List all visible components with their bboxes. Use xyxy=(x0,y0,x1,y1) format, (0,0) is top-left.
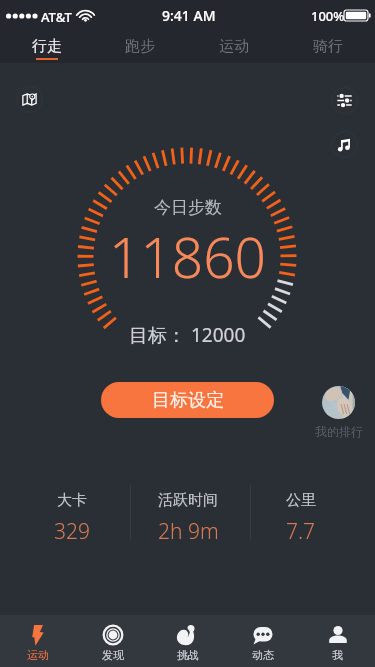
staticText: 大卡 xyxy=(57,491,87,510)
button[interactable]: 大卡 xyxy=(12,485,132,541)
staticText: 运动 xyxy=(27,648,49,662)
staticText: 100% xyxy=(311,7,345,25)
staticText: 2h 9m xyxy=(158,517,219,546)
button[interactable]: 活跃时间 xyxy=(128,485,248,541)
staticText: 行走 xyxy=(32,37,62,56)
staticText: 329 xyxy=(54,517,90,546)
staticText: 9:41 AM xyxy=(162,6,216,25)
staticText: 活跃时间 xyxy=(158,491,218,510)
button[interactable]: Map xyxy=(16,86,43,113)
staticText: 7.7 xyxy=(286,517,316,546)
staticText: 我的排行 xyxy=(315,424,363,439)
staticText: 运动 xyxy=(219,37,249,56)
button[interactable]: 我 xyxy=(300,615,375,667)
button[interactable]: 运动 xyxy=(0,615,75,667)
staticText: 动态 xyxy=(252,648,274,662)
staticText: 今日步数 xyxy=(154,197,222,218)
button[interactable]: 骑行 xyxy=(281,31,375,63)
staticText: AT&T xyxy=(41,8,72,26)
staticText: 目标设定 xyxy=(152,389,224,412)
staticText: 跑步 xyxy=(125,37,155,56)
button[interactable]: Music xyxy=(331,131,358,158)
button[interactable]: 发现 xyxy=(75,615,150,667)
staticText: 公里 xyxy=(286,491,316,510)
button[interactable]: 运动 xyxy=(187,31,281,63)
button[interactable]: 跑步 xyxy=(93,31,187,63)
button[interactable]: Settings xyxy=(331,87,358,114)
button[interactable]: 目标设定 xyxy=(101,382,274,418)
button[interactable]: 公里 xyxy=(241,485,361,541)
button[interactable]: 行走 xyxy=(0,31,93,63)
staticText: 目标： 12000 xyxy=(129,322,246,348)
button[interactable]: 挑战 xyxy=(150,615,225,667)
staticText: 骑行 xyxy=(313,37,343,56)
button[interactable]: 我的排行 xyxy=(312,386,365,439)
staticText: 发现 xyxy=(102,648,124,662)
staticText: 挑战 xyxy=(177,648,199,662)
staticText: 11860 xyxy=(109,219,267,294)
button[interactable]: 动态 xyxy=(225,615,300,667)
staticText: 我 xyxy=(332,648,343,662)
